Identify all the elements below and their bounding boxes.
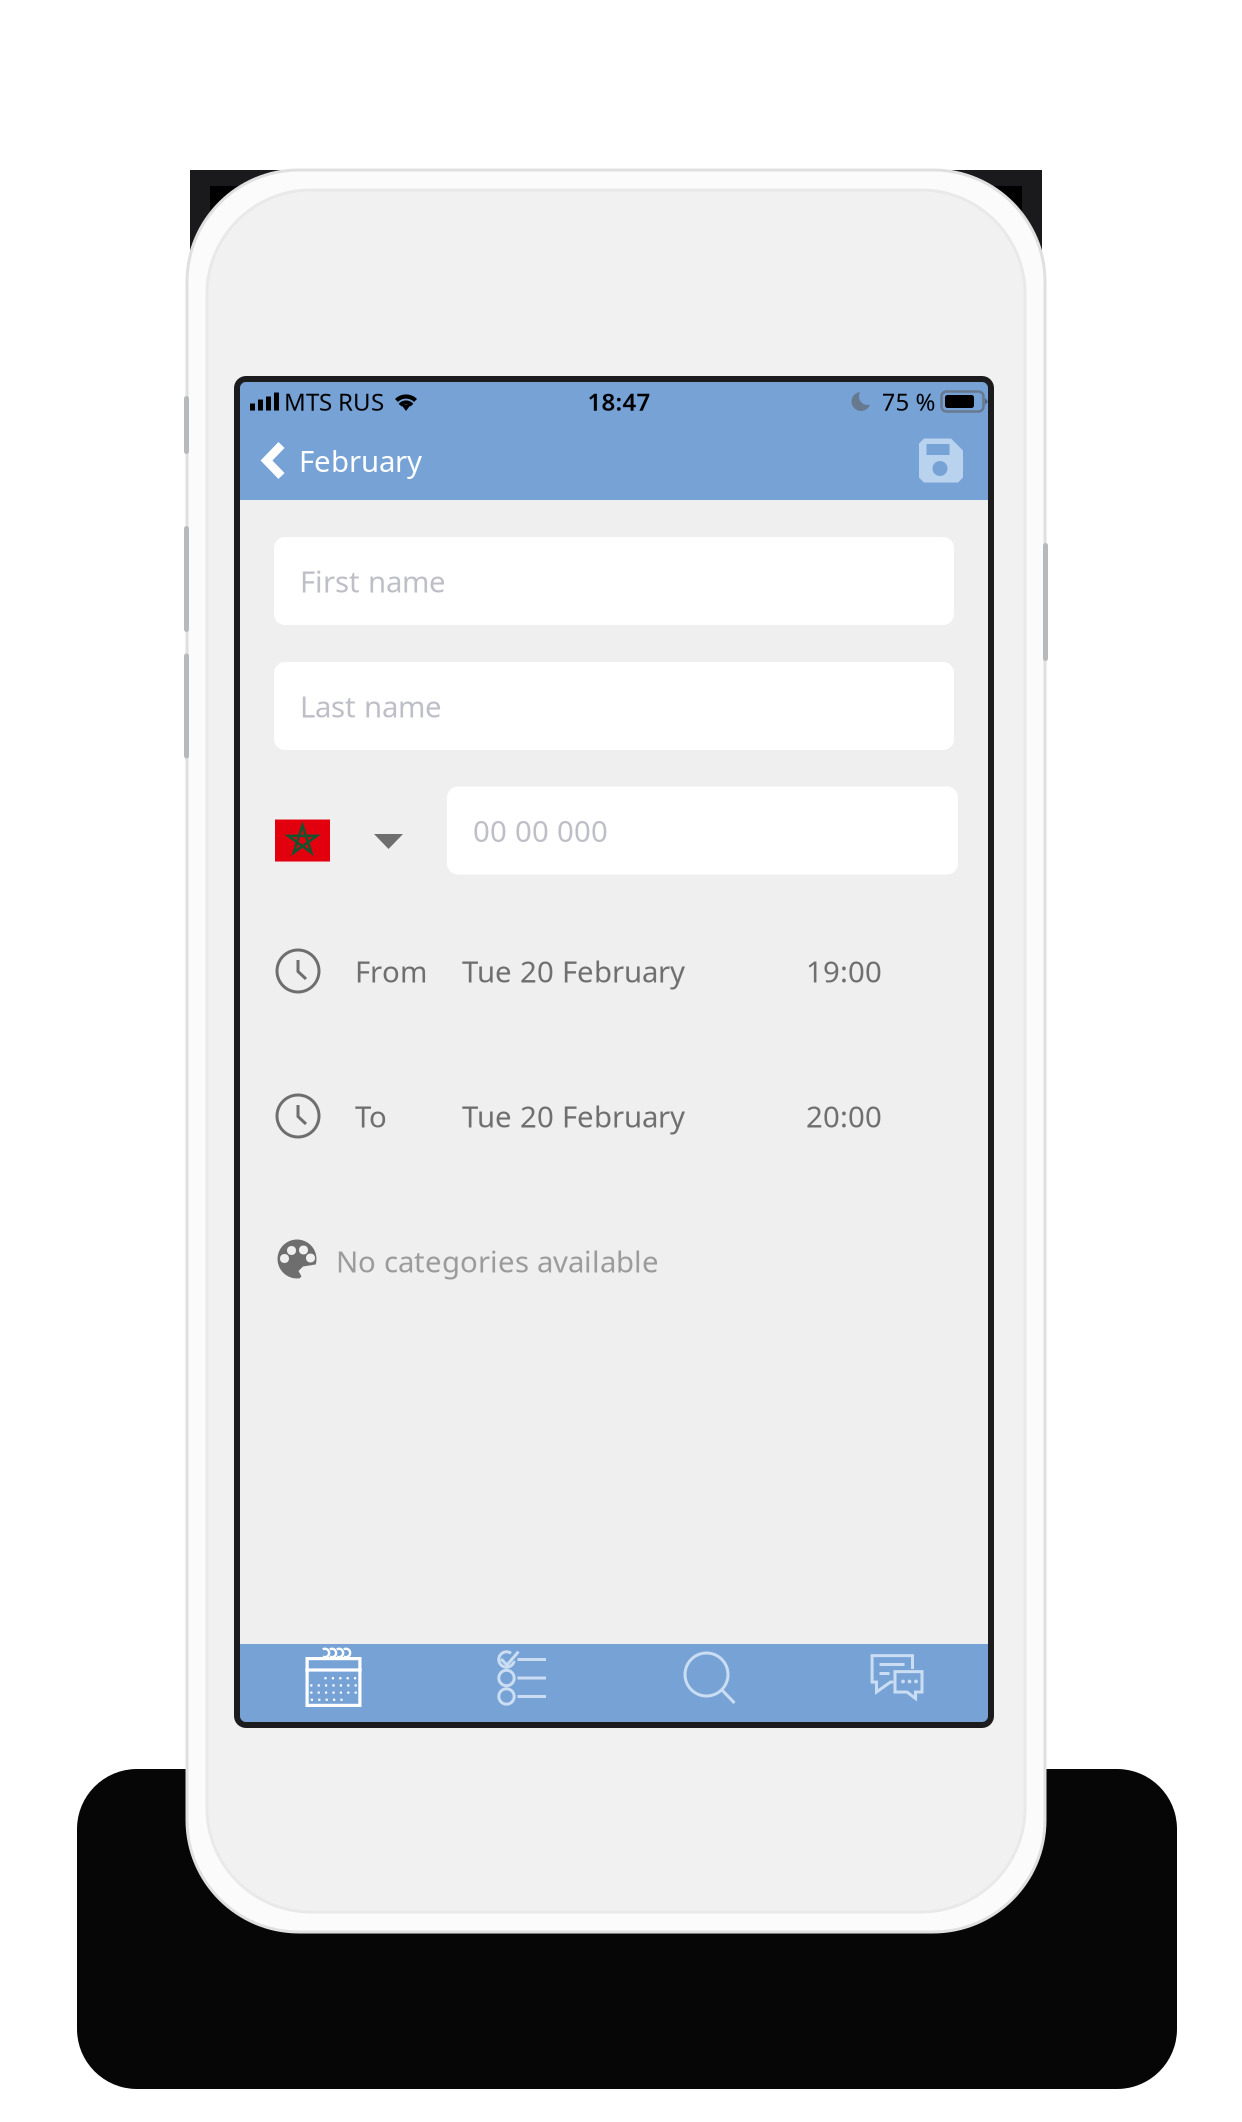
staticText: February: [299, 441, 422, 480]
button[interactable]: Calendar: [240, 1644, 427, 1722]
staticText: To: [355, 1096, 387, 1135]
button[interactable]: From: [240, 943, 988, 999]
staticText: 00 00 000: [473, 811, 608, 850]
button[interactable]: Save: [919, 421, 988, 500]
staticText: Tue 20 February: [462, 1096, 685, 1135]
staticText: MTS RUS: [284, 386, 384, 417]
button[interactable]: Messages: [801, 1644, 988, 1722]
button[interactable]: First name: [274, 537, 954, 625]
button[interactable]: 00 00 000: [447, 786, 958, 874]
staticText: 75 %: [881, 386, 935, 417]
staticText: No categories available: [336, 1241, 659, 1280]
staticText: 19:00: [806, 951, 882, 990]
staticText: Tue 20 February: [462, 951, 685, 990]
button[interactable]: Search: [614, 1644, 801, 1722]
staticText: 20:00: [806, 1096, 882, 1135]
button[interactable]: February: [240, 421, 438, 500]
staticText: Last name: [300, 686, 442, 725]
button[interactable]: To: [240, 1088, 988, 1144]
button[interactable]: Country code: [275, 786, 403, 875]
button[interactable]: Last name: [274, 662, 954, 750]
staticText: From: [355, 951, 427, 990]
staticText: First name: [300, 561, 446, 600]
staticText: 18:47: [587, 386, 650, 417]
button[interactable]: Tasks: [427, 1644, 614, 1722]
